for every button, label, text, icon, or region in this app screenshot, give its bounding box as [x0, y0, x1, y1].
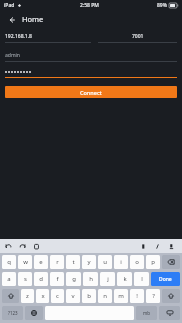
button[interactable]: Paste: [32, 242, 41, 251]
staticText: 2:58 PM: [80, 2, 99, 9]
button[interactable]: c: [51, 289, 64, 303]
button[interactable]: Hide keyboard: [159, 306, 180, 320]
button[interactable]: Done: [151, 272, 180, 286]
staticText: ?123: [8, 310, 18, 316]
staticText: j: [107, 275, 109, 283]
button[interactable]: Redo: [18, 242, 27, 251]
button[interactable]: !: [130, 289, 144, 303]
staticText: e: [39, 258, 43, 266]
button[interactable]: Shift: [2, 289, 19, 303]
button[interactable]: Back: [6, 14, 17, 25]
button[interactable]: h: [83, 272, 98, 286]
staticText: 89%: [157, 2, 167, 9]
staticText: a: [7, 275, 11, 283]
button[interactable]: ?: [146, 289, 160, 303]
button[interactable]: Bold: [139, 242, 148, 251]
staticText: ?: [152, 292, 155, 300]
button[interactable]: Shift: [162, 289, 180, 303]
staticText: mb: [143, 310, 150, 316]
staticText: w: [23, 258, 28, 266]
button[interactable]: Underline: [167, 242, 176, 251]
button[interactable]: z: [21, 289, 34, 303]
staticText: v: [71, 292, 75, 300]
button[interactable]: q: [2, 255, 16, 269]
staticText: t: [72, 258, 75, 266]
staticText: d: [39, 275, 43, 283]
button[interactable]: admin: [5, 51, 177, 62]
staticText: s: [24, 275, 27, 283]
staticText: Connect: [80, 89, 102, 96]
staticText: l: [141, 275, 143, 283]
button[interactable]: n: [98, 289, 112, 303]
button[interactable]: Undo: [4, 242, 13, 251]
button[interactable]: k: [117, 272, 132, 286]
button[interactable]: d: [34, 272, 48, 286]
button[interactable]: p: [146, 255, 160, 269]
button[interactable]: b: [82, 289, 96, 303]
button[interactable]: t: [66, 255, 80, 269]
button[interactable]: j: [100, 272, 115, 286]
button[interactable]: e: [34, 255, 48, 269]
staticText: r: [56, 258, 59, 266]
staticText: Done: [159, 276, 172, 283]
staticText: Home: [22, 14, 44, 24]
button[interactable]: Connect: [5, 86, 177, 98]
button[interactable]: g: [66, 272, 81, 286]
staticText: c: [56, 292, 59, 300]
button[interactable]: s: [18, 272, 32, 286]
button[interactable]: a: [2, 272, 16, 286]
staticText: b: [87, 292, 91, 300]
button[interactable]: m: [114, 289, 128, 303]
button[interactable]: y: [82, 255, 96, 269]
button[interactable]: w: [18, 255, 32, 269]
button[interactable]: r: [50, 255, 64, 269]
staticText: o: [135, 258, 139, 266]
staticText: q: [7, 258, 11, 266]
button[interactable]: 192.168.1.8: [5, 32, 91, 43]
button[interactable]: Backspace: [162, 255, 180, 269]
staticText: z: [26, 292, 29, 300]
button[interactable]: ?123: [2, 306, 23, 320]
staticText: k: [123, 275, 127, 283]
button[interactable]: u: [98, 255, 112, 269]
staticText: !: [136, 292, 138, 300]
button[interactable]: [5, 67, 177, 78]
button[interactable]: l: [134, 272, 149, 286]
button[interactable]: v: [66, 289, 80, 303]
staticText: g: [72, 275, 76, 283]
button[interactable]: f: [50, 272, 64, 286]
staticText: m: [118, 292, 124, 300]
button[interactable]: Change language: [25, 306, 43, 320]
button[interactable]: Italic: [153, 242, 162, 251]
staticText: n: [103, 292, 107, 300]
staticText: 7001: [132, 33, 144, 40]
staticText: i: [120, 258, 122, 266]
staticText: 192.168.1.8: [5, 33, 32, 40]
button[interactable]: x: [36, 289, 49, 303]
staticText: iPad: [4, 2, 15, 9]
staticText: p: [151, 258, 155, 266]
staticText: h: [89, 275, 93, 283]
staticText: y: [87, 258, 91, 266]
button[interactable]: mb: [136, 306, 157, 320]
staticText: f: [56, 275, 59, 283]
button[interactable]: i: [114, 255, 128, 269]
button[interactable]: o: [130, 255, 144, 269]
staticText: x: [41, 292, 45, 300]
staticText: admin: [5, 52, 20, 59]
staticText: u: [103, 258, 107, 266]
